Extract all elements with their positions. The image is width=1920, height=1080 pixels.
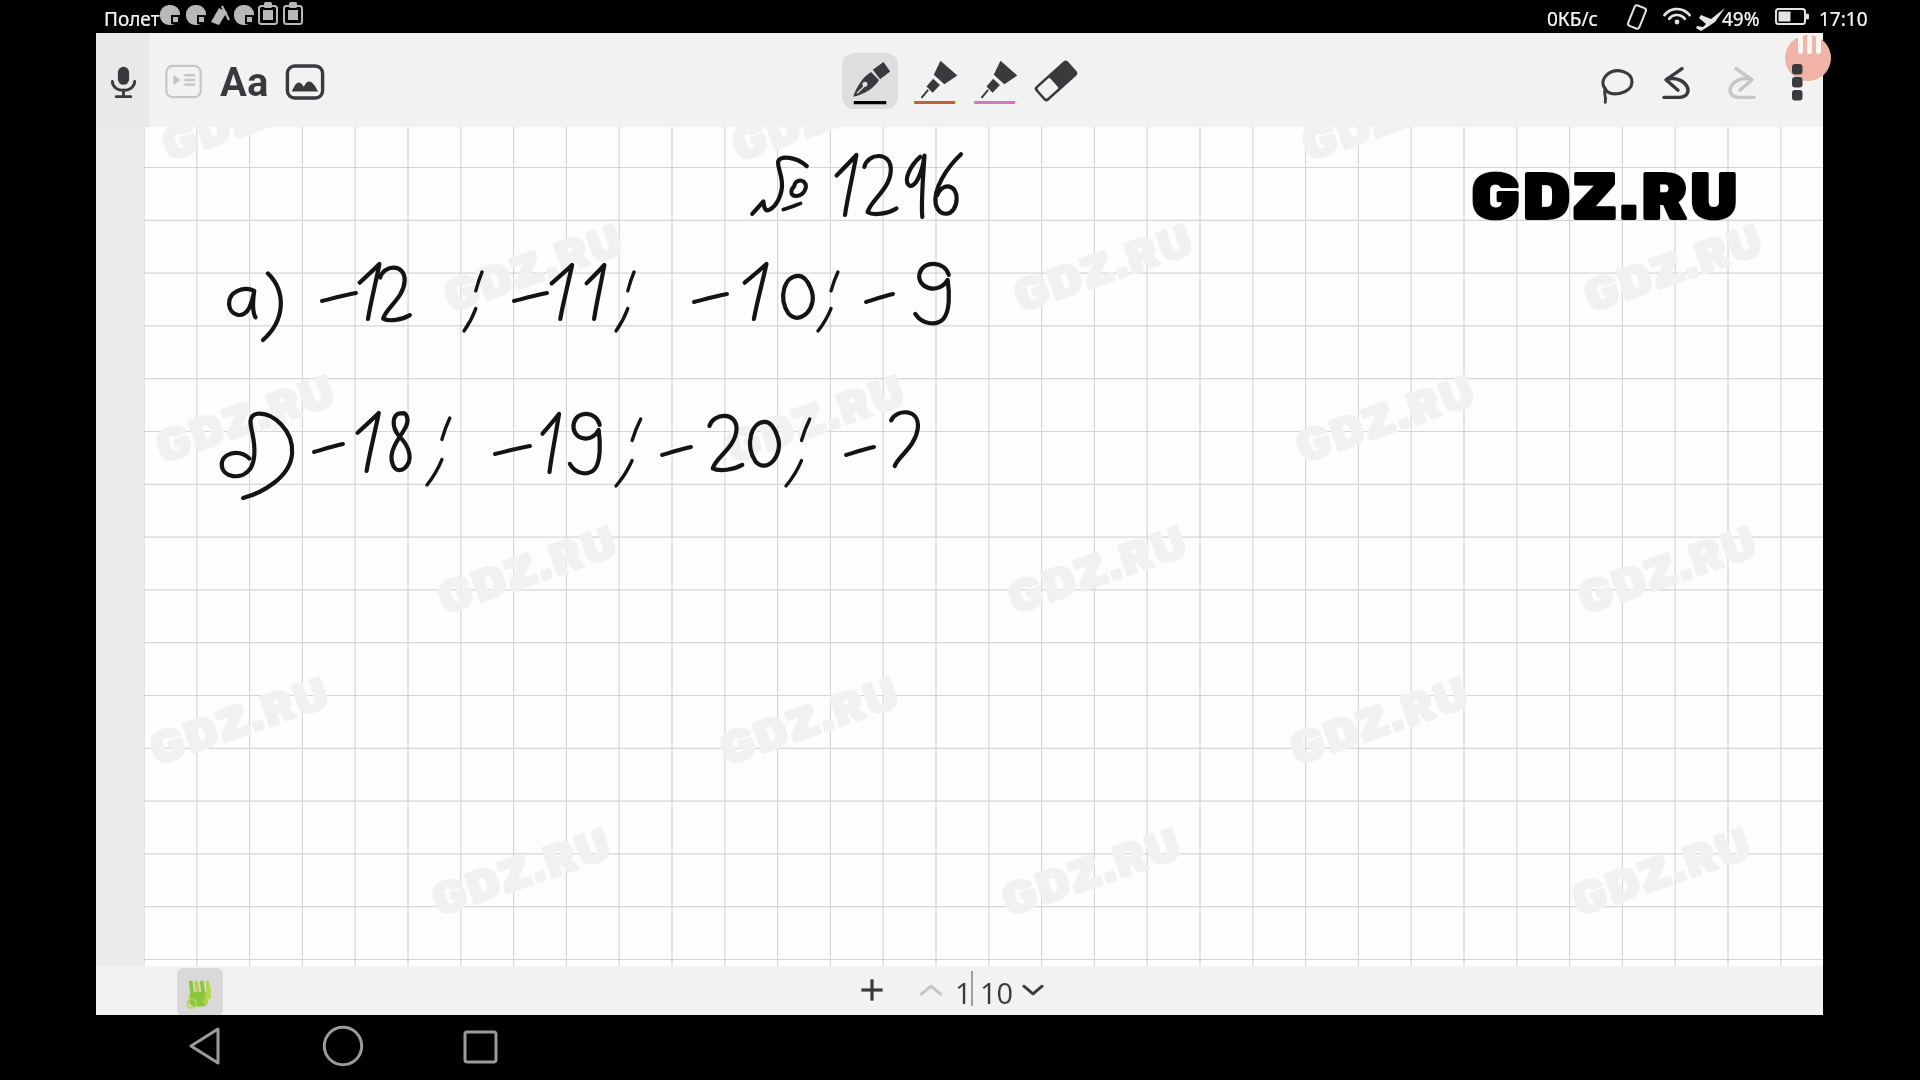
staticText: 17:10 <box>1819 6 1868 32</box>
button[interactable]: Voice input <box>102 59 145 102</box>
button[interactable]: More options <box>1782 59 1810 105</box>
button[interactable]: List <box>164 62 203 101</box>
button[interactable]: Hand tool <box>177 968 223 1016</box>
button[interactable]: Home <box>315 1018 371 1074</box>
button[interactable]: Previous page <box>911 971 951 1011</box>
button[interactable]: Insert image <box>285 62 325 102</box>
button[interactable]: Eraser <box>1028 53 1084 109</box>
staticText: 49% <box>1722 6 1760 32</box>
button[interactable]: Back <box>177 1018 233 1074</box>
button[interactable]: Fountain pen <box>842 53 898 109</box>
button[interactable]: Undo <box>1658 63 1698 103</box>
staticText: 0КБ/с <box>1547 6 1598 32</box>
staticText: Полет <box>104 6 160 32</box>
button[interactable]: Aa <box>218 59 270 103</box>
button[interactable]: Marker pink <box>968 53 1024 109</box>
staticText: 10 <box>980 973 1014 1012</box>
button[interactable]: Add page <box>853 971 891 1009</box>
button[interactable]: Next page <box>1014 971 1052 1009</box>
button[interactable]: Marker orange <box>908 53 964 109</box>
button[interactable]: Recents <box>452 1018 508 1074</box>
staticText: Aa <box>220 59 269 103</box>
staticText: 1 <box>955 973 972 1012</box>
button[interactable]: Lasso select <box>1596 63 1638 105</box>
button[interactable]: Redo <box>1720 63 1760 103</box>
